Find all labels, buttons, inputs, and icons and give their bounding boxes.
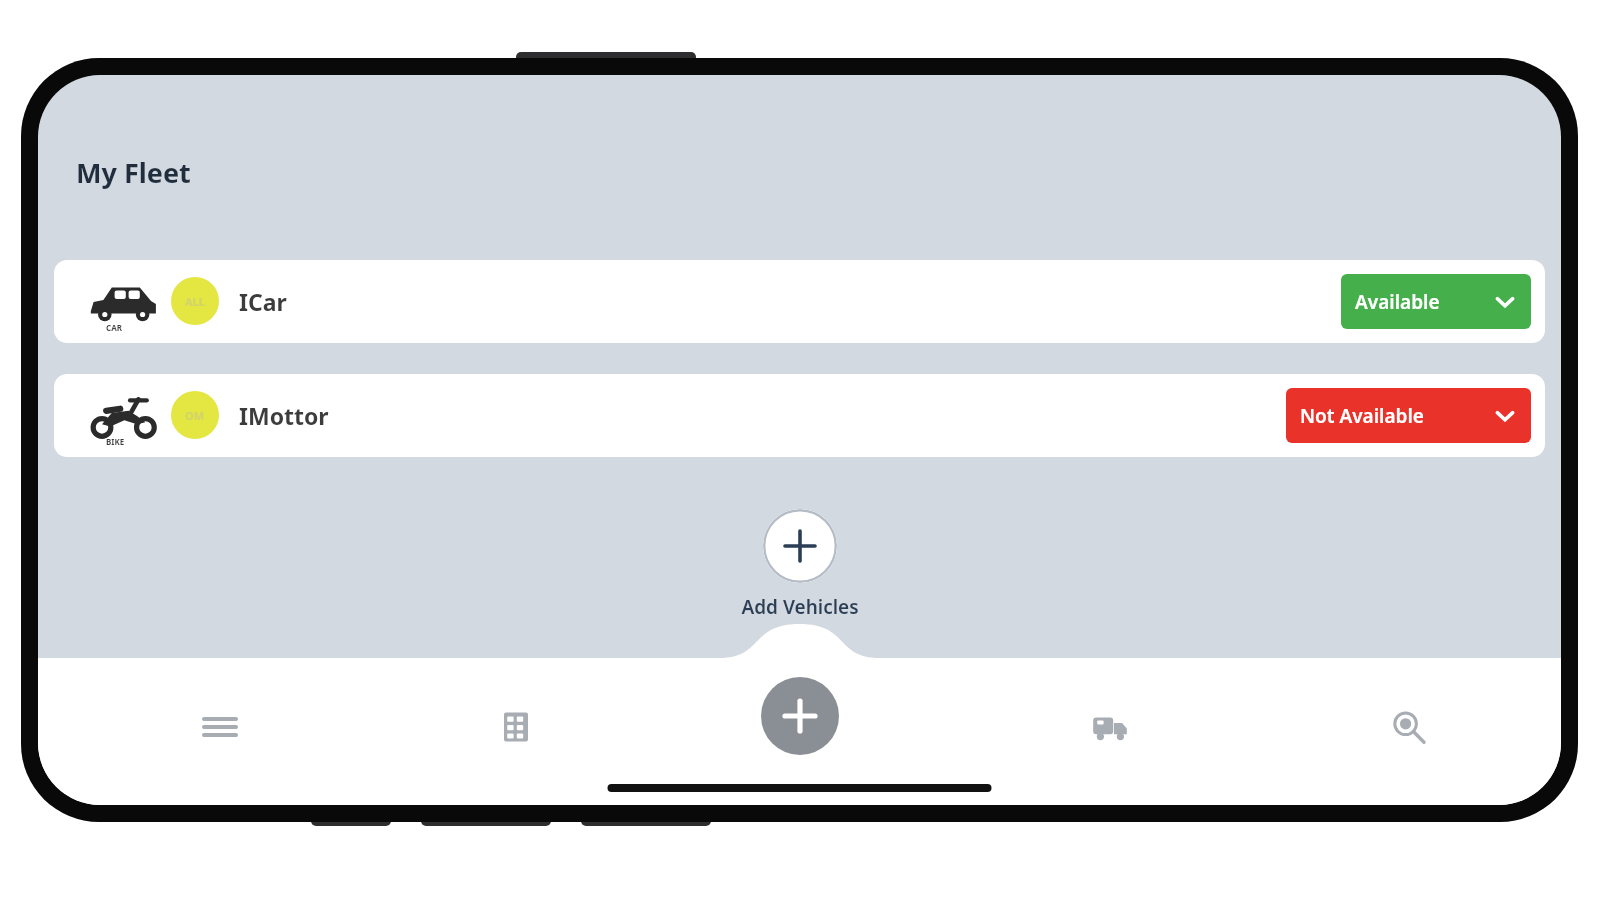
- button[interactable]: Available: [1341, 274, 1531, 329]
- button[interactable]: Deliveries: [1078, 695, 1142, 759]
- staticText: IMottor: [239, 400, 329, 431]
- staticText: CAR: [106, 322, 122, 333]
- staticText: Add Vehicles: [700, 594, 900, 620]
- staticText: Available: [1355, 289, 1493, 315]
- staticText: BIKE: [106, 436, 125, 447]
- button[interactable]: Search: [1376, 695, 1440, 759]
- button[interactable]: CAR: [54, 260, 1545, 343]
- staticText: ALL: [185, 294, 205, 309]
- button[interactable]: Not Available: [1286, 388, 1531, 443]
- button[interactable]: Add Vehicles: [700, 509, 900, 620]
- staticText: ICar: [239, 286, 287, 317]
- staticText: Not Available: [1300, 403, 1493, 429]
- button[interactable]: Add: [761, 677, 839, 755]
- staticText: OM: [185, 408, 205, 423]
- staticText: My Fleet: [76, 154, 191, 191]
- button[interactable]: BIKE: [54, 374, 1545, 457]
- button[interactable]: Menu: [188, 695, 252, 759]
- button[interactable]: Dashboard: [484, 695, 548, 759]
